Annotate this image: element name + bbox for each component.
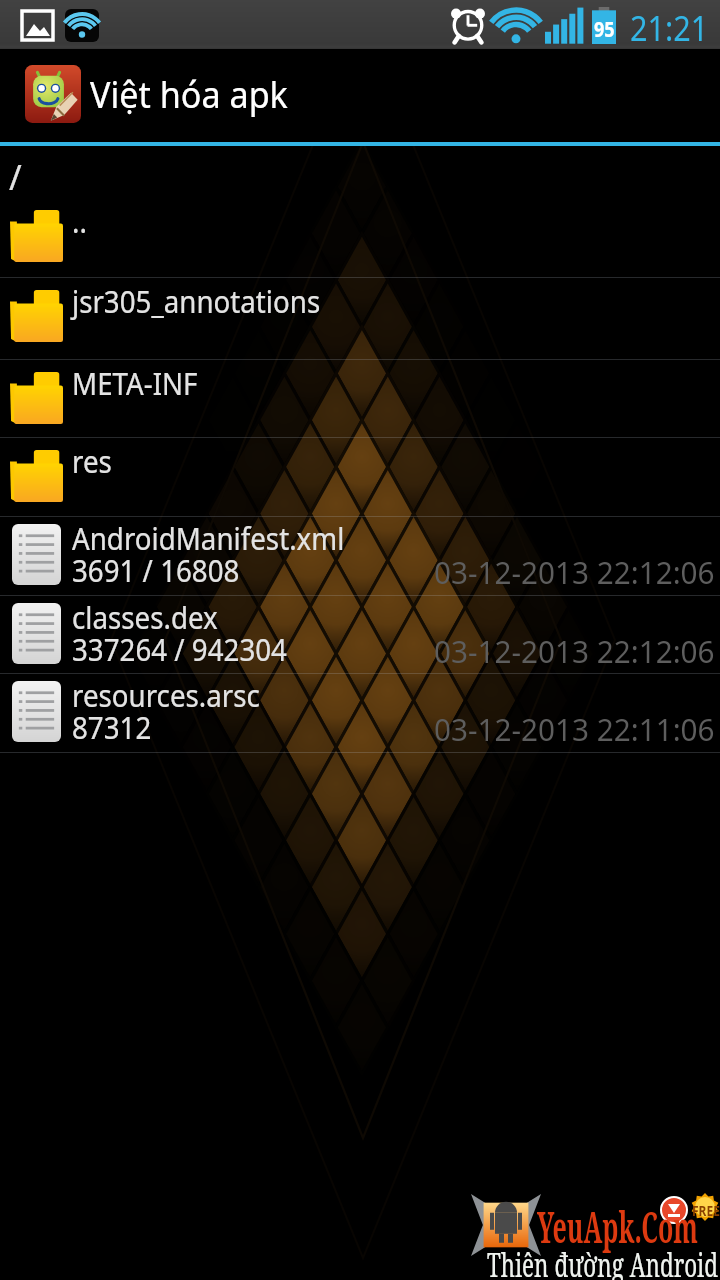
button[interactable]: res (0, 438, 720, 516)
staticText: res (72, 440, 112, 482)
button[interactable]: META-INF (0, 360, 720, 437)
staticText: FREE (692, 1200, 720, 1220)
staticText: Việt hóa apk (90, 70, 288, 119)
staticText: 3691 / 16808 (72, 549, 240, 591)
staticText: 03-12-2013 22:12:06 (434, 551, 715, 593)
staticText: 03-12-2013 22:12:06 (434, 630, 715, 672)
staticText: 87312 (72, 706, 152, 748)
staticText: classes.dex (72, 596, 218, 638)
staticText: 337264 / 942304 (72, 628, 287, 670)
staticText: 21:21 (630, 4, 709, 52)
button[interactable]: AndroidManifest.xml (0, 517, 720, 595)
staticText: 03-12-2013 22:11:06 (434, 708, 715, 750)
button[interactable]: classes.dex (0, 596, 720, 673)
button[interactable]: resources.arsc (0, 674, 720, 752)
button[interactable]: / (0, 146, 720, 198)
staticText: Thiên đường Android (487, 1243, 719, 1280)
button[interactable]: jsr305_annotations (0, 278, 720, 359)
staticText: .. (72, 200, 87, 242)
staticText: 95 (594, 13, 615, 43)
staticText: YeuApk.Com (537, 1196, 698, 1255)
staticText: META-INF (72, 362, 198, 404)
staticText: AndroidManifest.xml (72, 517, 345, 559)
staticText: resources.arsc (72, 674, 261, 716)
button[interactable]: .. (0, 198, 720, 277)
staticText: jsr305_annotations (72, 280, 320, 322)
staticText: / (9, 154, 22, 200)
button[interactable]: Việt hóa apk (0, 49, 720, 142)
